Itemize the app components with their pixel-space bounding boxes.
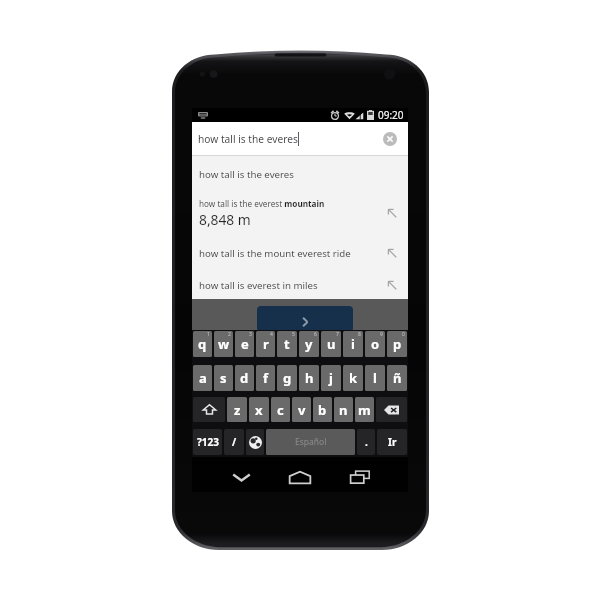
staticText: 6 (314, 331, 317, 338)
staticText: 3 (249, 331, 252, 338)
button[interactable]: z (227, 397, 247, 422)
button[interactable]: d (235, 365, 254, 391)
staticText: p (393, 335, 402, 353)
staticText: Ir (388, 435, 397, 449)
staticText: q (198, 335, 207, 353)
staticText: 1 (207, 331, 210, 338)
staticText: y (305, 335, 313, 353)
button[interactable]: Shift (193, 397, 225, 422)
staticText: b (318, 401, 327, 419)
button[interactable]: 2 (214, 331, 233, 357)
staticText: Español (295, 436, 327, 448)
button[interactable]: Clear query (381, 130, 399, 148)
button[interactable]: 1 (193, 331, 212, 357)
staticText: . (365, 435, 368, 449)
staticText: 5 (292, 331, 295, 338)
staticText: n (339, 401, 348, 419)
button[interactable]: Recent apps (340, 462, 380, 492)
staticText: t (284, 335, 290, 353)
button[interactable]: b (313, 397, 332, 422)
staticText: 0 (402, 331, 405, 338)
staticText: v (298, 401, 306, 419)
button[interactable]: x (249, 397, 269, 422)
staticText: how tall is the everest mountain (199, 198, 325, 209)
button[interactable]: ?123 (193, 429, 222, 455)
staticText: j (329, 369, 333, 387)
staticText: how tall is the everes (199, 168, 294, 181)
button[interactable]: j (321, 365, 341, 391)
button[interactable]: how tall is the mount everest ride (192, 235, 408, 271)
button[interactable]: g (277, 365, 297, 391)
button[interactable]: c (271, 397, 290, 422)
button[interactable]: 7 (321, 331, 341, 357)
button[interactable]: 0 (387, 331, 407, 357)
button[interactable]: how tall is the everes (192, 156, 408, 192)
button[interactable]: Next suggestion (257, 306, 353, 330)
staticText: x (255, 401, 263, 419)
staticText: 9 (380, 331, 383, 338)
staticText: w (218, 335, 230, 353)
staticText: how tall is everest in miles (199, 279, 318, 292)
button[interactable]: 3 (235, 331, 254, 357)
staticText: m (358, 401, 371, 419)
button[interactable]: 9 (365, 331, 385, 357)
button[interactable]: n (334, 397, 353, 422)
button[interactable]: ñ (387, 365, 407, 391)
button[interactable]: how tall is the everest mountain (192, 192, 408, 235)
staticText: e (241, 335, 249, 353)
button[interactable]: m (355, 397, 374, 422)
button[interactable]: 6 (299, 331, 319, 357)
button[interactable]: . (357, 429, 375, 455)
staticText: ñ (393, 369, 402, 387)
staticText: i (351, 335, 355, 353)
button[interactable]: k (343, 365, 363, 391)
staticText: o (371, 335, 380, 353)
button[interactable]: l (365, 365, 385, 391)
staticText: u (327, 335, 336, 353)
staticText: l (373, 369, 377, 387)
button[interactable]: Change language (246, 429, 264, 455)
staticText: 09:20 (378, 108, 404, 122)
button[interactable]: Español (266, 429, 355, 455)
button[interactable]: 5 (277, 331, 297, 357)
staticText: a (199, 369, 207, 387)
button[interactable]: 4 (256, 331, 275, 357)
button[interactable]: s (214, 365, 233, 391)
staticText: 7 (336, 331, 339, 338)
button[interactable]: how tall is everest in miles (192, 271, 408, 299)
button[interactable]: Hide keyboard (221, 462, 261, 492)
staticText: s (220, 369, 227, 387)
button[interactable]: a (193, 365, 212, 391)
staticText: how tall is the mount everest ride (199, 247, 351, 260)
staticText: 2 (228, 331, 231, 338)
staticText: 4 (270, 331, 273, 338)
button[interactable]: f (256, 365, 275, 391)
button[interactable]: 8 (343, 331, 363, 357)
staticText: how tall is the everes (198, 132, 298, 146)
button[interactable]: v (292, 397, 311, 422)
staticText: / (232, 435, 237, 449)
button[interactable]: h (299, 365, 319, 391)
button[interactable]: Home (280, 462, 320, 492)
staticText: d (240, 369, 249, 387)
staticText: c (277, 401, 284, 419)
staticText: h (305, 369, 314, 387)
staticText: 8 (358, 331, 361, 338)
staticText: z (234, 401, 241, 419)
staticText: 8,848 m (199, 210, 251, 229)
staticText: ?123 (197, 435, 219, 449)
button[interactable]: Backspace (376, 397, 407, 422)
staticText: k (349, 369, 358, 387)
button[interactable]: / (224, 429, 244, 455)
staticText: g (283, 369, 292, 387)
button[interactable]: Ir (377, 429, 407, 455)
staticText: r (263, 335, 269, 353)
staticText: f (263, 369, 269, 387)
